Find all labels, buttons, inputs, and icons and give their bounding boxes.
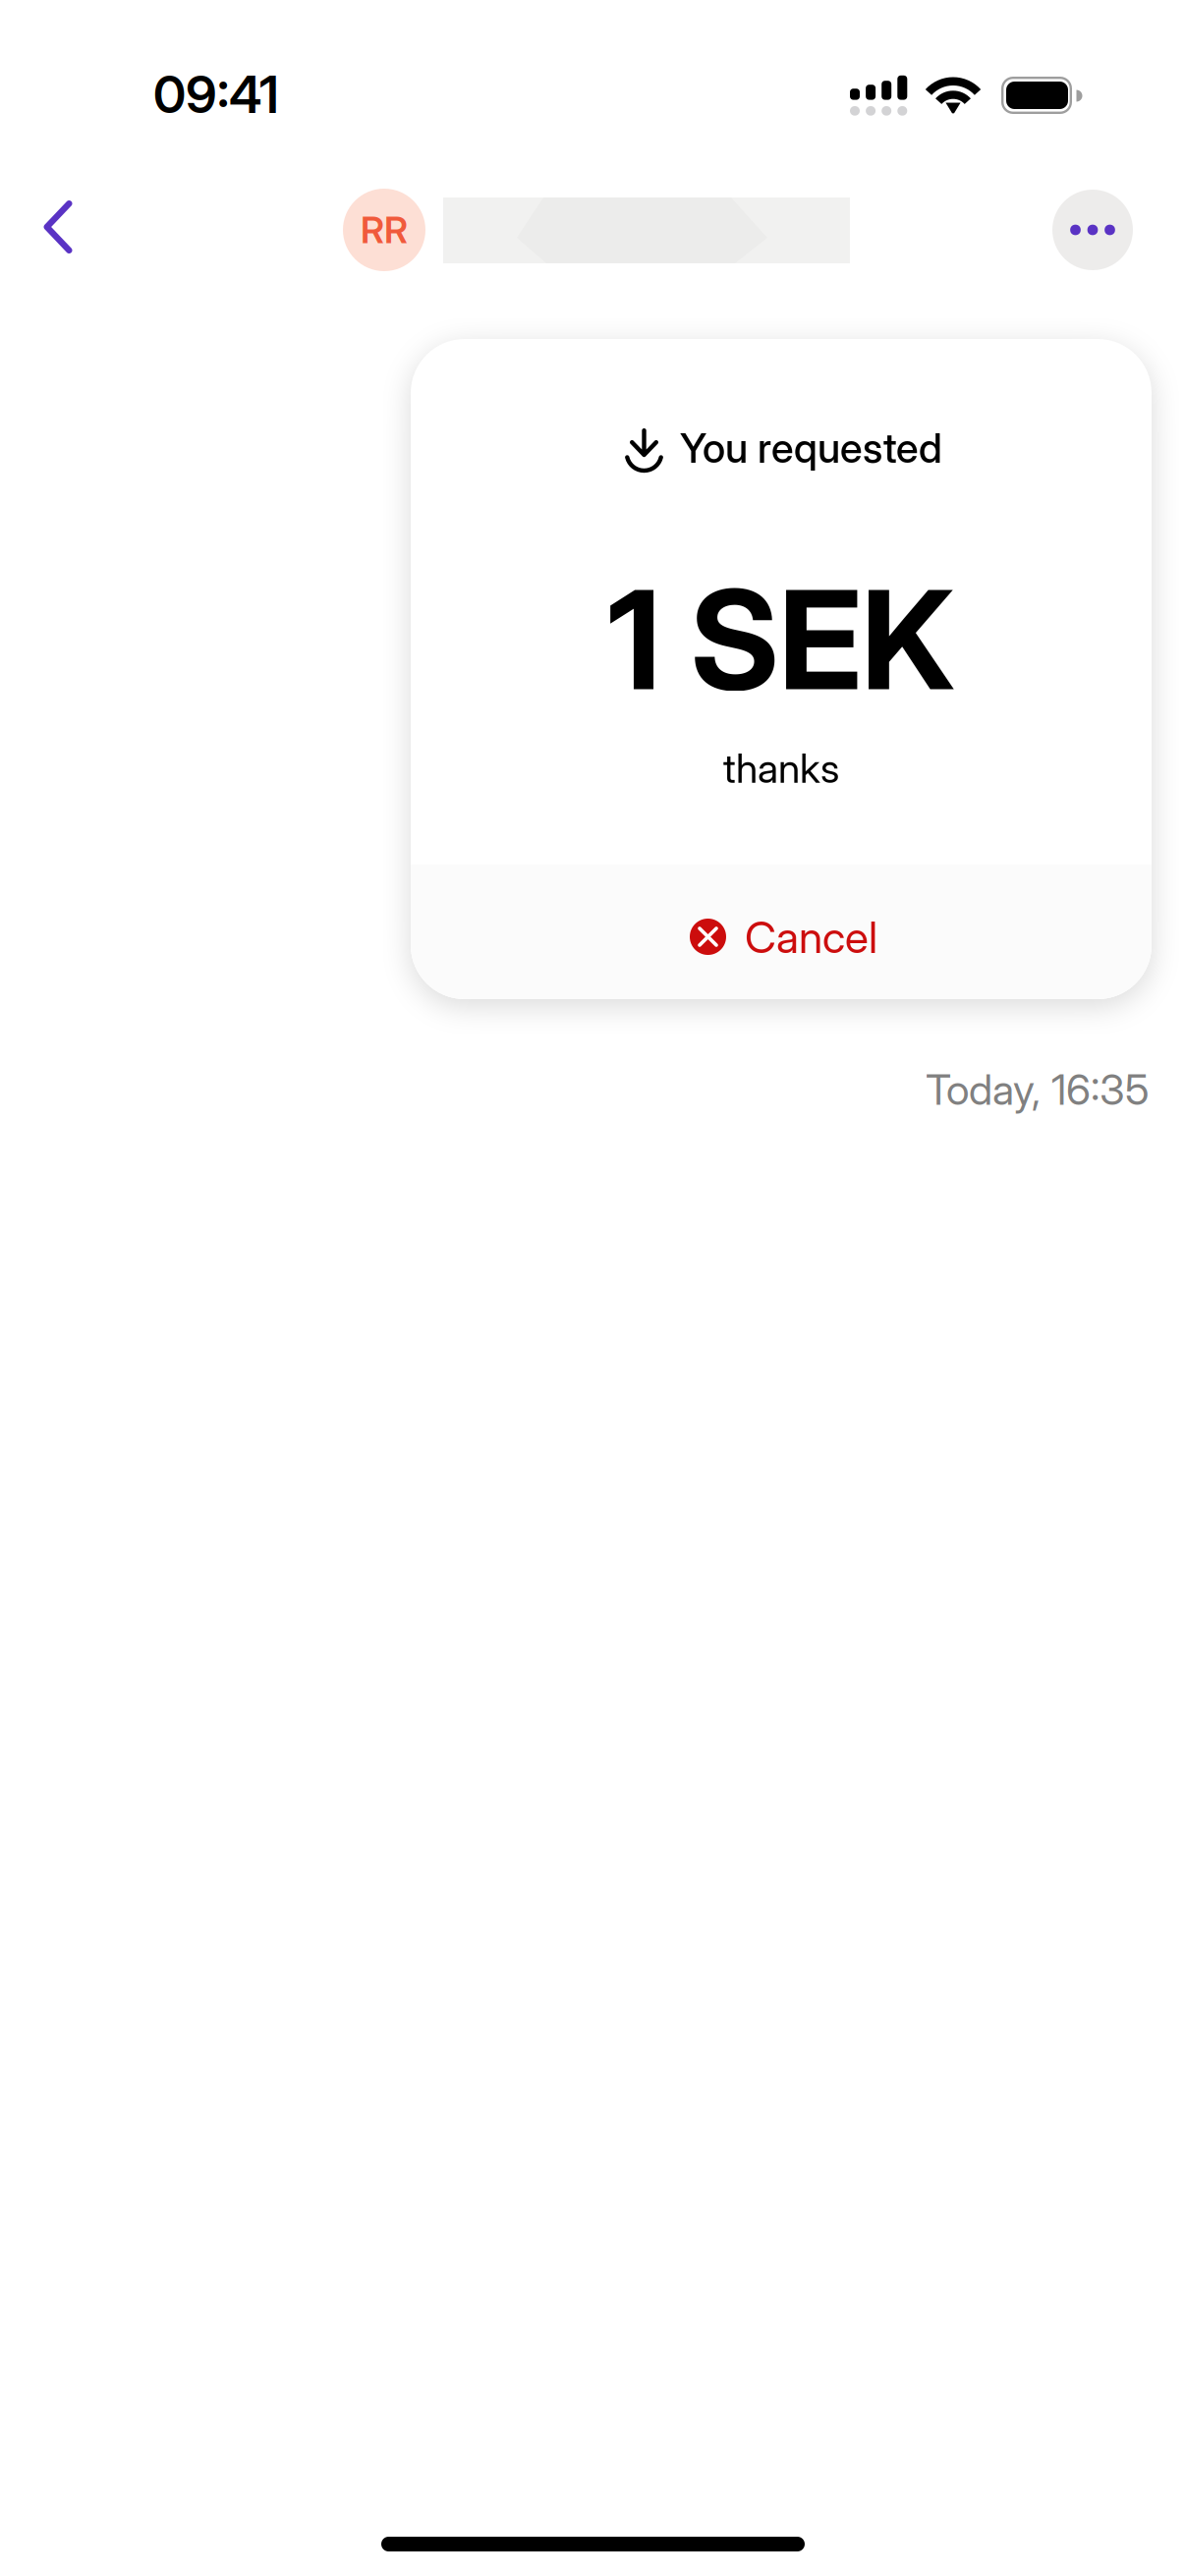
staticText: You requested	[680, 423, 942, 473]
button[interactable]: Cancel	[411, 865, 1152, 999]
staticText: Today, 16:35	[926, 1064, 1150, 1115]
button[interactable]: More options	[1045, 183, 1140, 277]
staticText: 1 SEK	[608, 557, 955, 722]
staticText: thanks	[723, 744, 839, 792]
staticText: RR	[361, 208, 408, 252]
staticText: Cancel	[745, 911, 877, 964]
button[interactable]: Back	[11, 180, 105, 274]
staticText: 09:41	[153, 63, 279, 125]
